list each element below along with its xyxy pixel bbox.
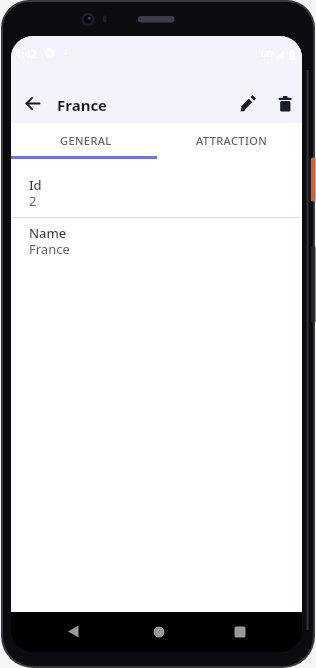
button[interactable]: ATTRACTION — [157, 123, 302, 160]
button[interactable] — [231, 88, 263, 120]
button[interactable] — [17, 88, 48, 119]
staticText: 2 — [29, 192, 37, 210]
button[interactable] — [59, 617, 89, 647]
staticText: France — [57, 95, 108, 115]
staticText: France — [29, 240, 70, 258]
staticText: Name — [29, 224, 67, 242]
button[interactable]: GENERAL — [11, 123, 157, 160]
staticText: LTE — [261, 48, 275, 59]
staticText: Id — [29, 176, 42, 194]
staticText: 4:42 — [15, 46, 37, 61]
button[interactable] — [225, 617, 255, 647]
button[interactable] — [144, 617, 174, 647]
button[interactable] — [269, 88, 301, 120]
staticText: GENERAL — [60, 133, 112, 148]
staticText: ATTRACTION — [196, 133, 268, 148]
